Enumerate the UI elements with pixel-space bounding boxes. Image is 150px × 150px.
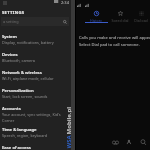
button[interactable]: Devices	[0, 52, 71, 70]
button[interactable]: Time & language	[0, 127, 71, 145]
button[interactable]: Speed dial	[108, 9, 132, 22]
button[interactable]: Voicemail	[108, 135, 122, 149]
button[interactable]: Personalization	[0, 88, 71, 106]
button[interactable]: History	[84, 9, 108, 22]
button[interactable]: System	[0, 34, 71, 52]
staticText: WSA	[64, 134, 71, 148]
button[interactable]: a setting	[1, 17, 69, 26]
button[interactable]: Search	[136, 135, 150, 149]
staticText: Display, notifications, battery	[2, 40, 54, 45]
staticText: History	[90, 18, 102, 22]
staticText: Time & language	[2, 127, 37, 133]
staticText: Bluetooth, camera	[2, 58, 35, 63]
staticText: Devices	[2, 52, 18, 58]
staticText: SETTINGS	[2, 10, 25, 16]
staticText: Your account, sync settings, Kid's Corne…	[2, 112, 61, 123]
staticText: 2:34	[61, 0, 69, 5]
staticText: Ease of access	[2, 145, 31, 150]
button[interactable]: Contacts	[122, 135, 136, 149]
staticText: Wi-Fi, airplane mode, cellular	[2, 76, 54, 81]
staticText: Personalization	[2, 88, 34, 94]
staticText: Dial pad	[134, 18, 148, 22]
staticText: Network & wireless	[2, 70, 42, 76]
button[interactable]: Ease of access	[0, 145, 71, 150]
button[interactable]: Dial pad	[132, 9, 150, 22]
staticText: Speed dial	[111, 18, 129, 22]
staticText: Mobile.pl	[64, 106, 71, 134]
staticText: Speech, region, keyboard	[2, 133, 48, 138]
button[interactable]: Accounts	[0, 106, 71, 127]
button[interactable]: Network & wireless	[0, 70, 71, 88]
staticText: Start, lock screen, sounds	[2, 94, 48, 99]
staticText: a setting	[3, 19, 19, 24]
staticText: System	[2, 34, 17, 40]
staticText: Accounts	[2, 106, 21, 112]
staticText: Calls you make and receive will appear h…	[79, 35, 150, 47]
